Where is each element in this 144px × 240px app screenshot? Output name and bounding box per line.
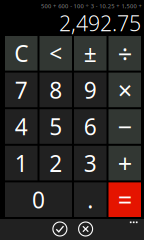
button[interactable]: + [108,146,141,180]
button[interactable]: 8 [39,73,72,107]
staticText: 2,492.75 [59,9,141,37]
staticText: ± [84,38,97,68]
button[interactable]: C [5,36,37,71]
button[interactable]: 4 [5,109,37,144]
staticText: 9 [84,75,97,105]
button[interactable]: = [108,182,141,217]
button[interactable]: 0 [5,182,72,217]
button[interactable]: Cancel [75,218,97,240]
staticText: C [14,38,28,68]
button[interactable]: 6 [74,109,106,144]
button[interactable]: 9 [74,73,106,107]
staticText: = [118,183,132,216]
staticText: 2 [49,148,62,178]
staticText: 7 [15,75,28,105]
staticText: < [49,38,62,68]
button[interactable]: × [108,73,141,107]
button[interactable]: − [108,109,141,144]
button[interactable]: More [126,217,142,227]
staticText: 0 [32,185,45,215]
staticText: 5 [49,111,62,141]
button[interactable]: < [39,36,72,71]
button[interactable]: . [74,182,106,217]
staticText: + [118,146,132,180]
staticText: ÷ [118,36,132,70]
staticText: 1 [15,148,28,178]
button[interactable]: 7 [5,73,37,107]
staticText: × [118,73,132,107]
staticText: 6 [84,111,97,141]
staticText: 8 [49,75,62,105]
button[interactable]: 5 [39,109,72,144]
button[interactable]: ÷ [108,36,141,71]
button[interactable]: 2 [39,146,72,180]
button[interactable]: ± [74,36,106,71]
button[interactable]: Confirm [49,218,71,240]
staticText: 500 + 600 - 100 ÷ 3 - 10.25 + 1,500 + [32,2,144,10]
staticText: 4 [15,111,28,141]
staticText: − [118,110,132,143]
button[interactable]: 3 [74,146,106,180]
staticText: 3 [84,148,97,178]
button[interactable]: 1 [5,146,37,180]
staticText: . [87,185,93,215]
